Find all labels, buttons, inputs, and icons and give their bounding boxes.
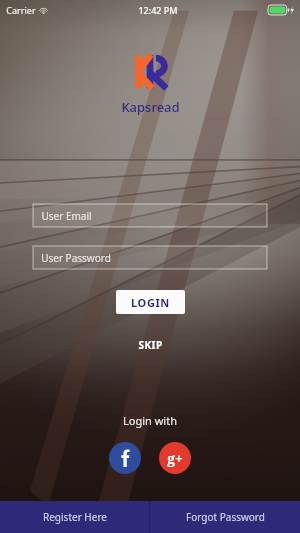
- staticText: g+: [167, 449, 183, 468]
- button[interactable]: Forgot Password: [150, 501, 300, 533]
- staticText: Login with: [123, 413, 177, 428]
- staticText: Register Here: [43, 510, 107, 524]
- button[interactable]: SKIP: [124, 334, 177, 356]
- staticText: SKIP: [138, 338, 163, 352]
- button[interactable]: Login with Google Plus: [159, 442, 191, 474]
- button[interactable]: User Password: [33, 246, 267, 269]
- staticText: User Email: [41, 209, 92, 223]
- staticText: LOGIN: [131, 295, 170, 310]
- button[interactable]: User Email: [33, 204, 267, 227]
- button[interactable]: LOGIN: [116, 290, 185, 314]
- button[interactable]: Register Here: [0, 501, 149, 533]
- staticText: Carrier: [6, 4, 36, 16]
- staticText: Kapsread: [121, 98, 180, 116]
- staticText: Forgot Password: [186, 510, 265, 524]
- staticText: 12:42 PM: [138, 4, 178, 16]
- button[interactable]: Login with Facebook: [109, 442, 141, 474]
- staticText: User Password: [41, 251, 111, 265]
